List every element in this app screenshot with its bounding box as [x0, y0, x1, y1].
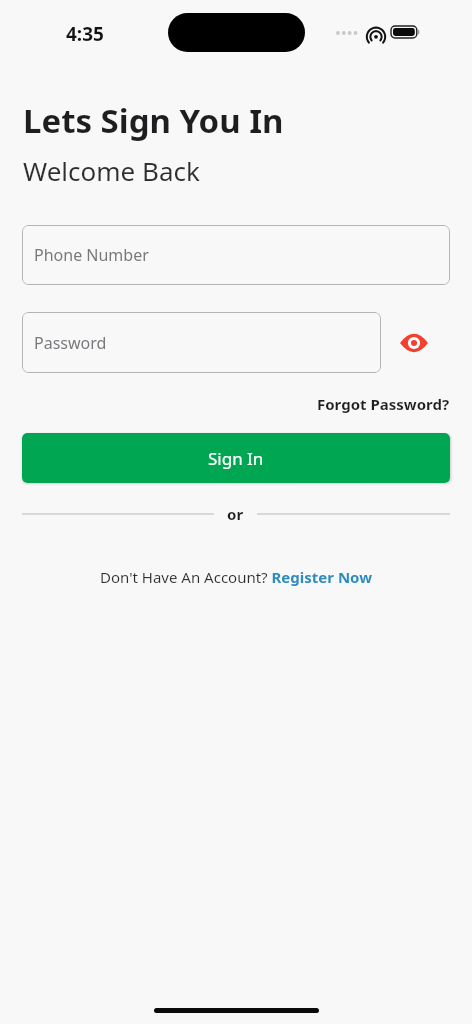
staticText: 4:35 — [66, 21, 104, 47]
button[interactable]: Don't Have An Account? Register Now — [100, 567, 372, 587]
staticText: Lets Sign You In — [23, 98, 284, 143]
staticText: Don't Have An Account? Register Now — [100, 567, 372, 587]
button[interactable]: Show password — [395, 324, 433, 362]
staticText: Password — [34, 332, 107, 354]
button[interactable]: Sign In — [22, 433, 450, 483]
button[interactable]: Forgot Password? — [317, 394, 450, 414]
button[interactable]: Phone Number — [22, 225, 450, 285]
staticText: or — [227, 504, 244, 524]
button[interactable]: Password — [22, 312, 381, 373]
staticText: Sign In — [208, 447, 264, 470]
staticText: Phone Number — [34, 244, 149, 266]
staticText: Welcome Back — [23, 153, 200, 188]
staticText: Forgot Password? — [317, 394, 450, 414]
